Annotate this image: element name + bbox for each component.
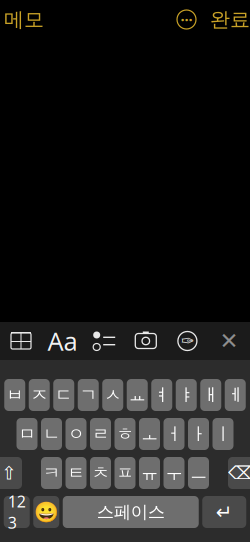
staticText: ㅑ [178, 384, 195, 406]
staticText: ㅊ [92, 462, 109, 484]
button[interactable]: ㅗ [139, 418, 160, 450]
staticText: ㅎ [116, 423, 133, 445]
button[interactable]: ㅂ [4, 379, 25, 411]
button[interactable]: ㄹ [90, 418, 111, 450]
button[interactable]: ㅅ [102, 379, 123, 411]
staticText: ㄱ [80, 384, 97, 406]
staticText: 완료 [210, 7, 250, 32]
staticText: ㅠ [141, 462, 158, 484]
staticText: ㅁ [18, 423, 35, 445]
staticText: ㅍ [116, 462, 133, 484]
button[interactable]: 메모 [0, 1, 44, 38]
button[interactable]: ㅋ [41, 457, 62, 489]
button[interactable]: ㅠ [139, 457, 160, 489]
button[interactable]: 줄바꿈 [202, 496, 246, 528]
staticText: ㅐ [202, 384, 219, 406]
button[interactable]: ㅇ [65, 418, 86, 450]
button[interactable]: ㅕ [151, 379, 172, 411]
staticText: ㅂ [6, 384, 23, 406]
button[interactable]: ㅊ [90, 457, 111, 489]
staticText: Aa [48, 324, 78, 358]
button[interactable]: 123 [4, 496, 30, 528]
button[interactable]: ㅌ [65, 457, 86, 489]
button[interactable]: 체크리스트 [83, 322, 125, 360]
button[interactable]: ㅡ [188, 457, 209, 489]
staticText: ㅅ [104, 384, 121, 406]
button[interactable]: ㅎ [114, 418, 135, 450]
staticText: ↵ [216, 501, 233, 523]
staticText: ㅗ [141, 423, 158, 445]
button[interactable]: ㄱ [78, 379, 99, 411]
button[interactable]: ㅣ [212, 418, 233, 450]
staticText: ··· [180, 10, 192, 29]
staticText: ㅕ [153, 384, 170, 406]
staticText: ㅜ [165, 462, 182, 484]
staticText: 메모 [4, 7, 44, 32]
staticText: ㅔ [227, 384, 244, 406]
button[interactable]: ㄷ [53, 379, 74, 411]
staticText: ⇧ [1, 462, 17, 484]
staticText: ㄹ [92, 423, 109, 445]
staticText: 😀 [34, 501, 59, 523]
button[interactable]: 키보드 닫기 [208, 322, 250, 360]
button[interactable]: ㅈ [29, 379, 50, 411]
button[interactable]: ㅔ [225, 379, 246, 411]
button[interactable]: 카메라 [125, 322, 167, 360]
button[interactable]: 스페이스 [63, 496, 199, 528]
staticText: ㅏ [190, 423, 207, 445]
button[interactable]: ㅍ [114, 457, 135, 489]
button[interactable]: ㅏ [188, 418, 209, 450]
button[interactable]: ㅛ [127, 379, 148, 411]
staticText: ㅋ [43, 462, 60, 484]
staticText: ㅣ [214, 423, 231, 445]
button[interactable]: ㅓ [163, 418, 184, 450]
staticText: ✑ [181, 332, 194, 350]
button[interactable]: 마크업 [167, 322, 208, 360]
button[interactable]: ㅜ [163, 457, 184, 489]
staticText: ㅡ [190, 462, 207, 484]
button[interactable]: 이모티콘 [33, 496, 59, 528]
button[interactable]: 더보기 [177, 4, 196, 35]
staticText: ⌫ [228, 462, 250, 484]
button[interactable]: ㅑ [176, 379, 197, 411]
button[interactable]: 완료 [196, 1, 250, 38]
button[interactable]: 표 [0, 322, 42, 360]
staticText: ✕ [219, 328, 238, 354]
button[interactable]: ㅐ [200, 379, 221, 411]
button[interactable]: ㄴ [41, 418, 62, 450]
button[interactable]: 지우기 [228, 457, 250, 489]
staticText: 스페이스 [97, 501, 165, 523]
staticText: ㄴ [43, 423, 60, 445]
staticText: ㅇ [67, 423, 84, 445]
staticText: ㅛ [129, 384, 146, 406]
staticText: 123 [8, 491, 26, 533]
button[interactable]: 서식 [42, 322, 83, 360]
button[interactable]: 쉬프트 [0, 457, 22, 489]
staticText: ㄷ [55, 384, 72, 406]
button[interactable]: ㅁ [16, 418, 37, 450]
staticText: ㅓ [165, 423, 182, 445]
staticText: ㅌ [67, 462, 84, 484]
staticText: ㅈ [31, 384, 48, 406]
